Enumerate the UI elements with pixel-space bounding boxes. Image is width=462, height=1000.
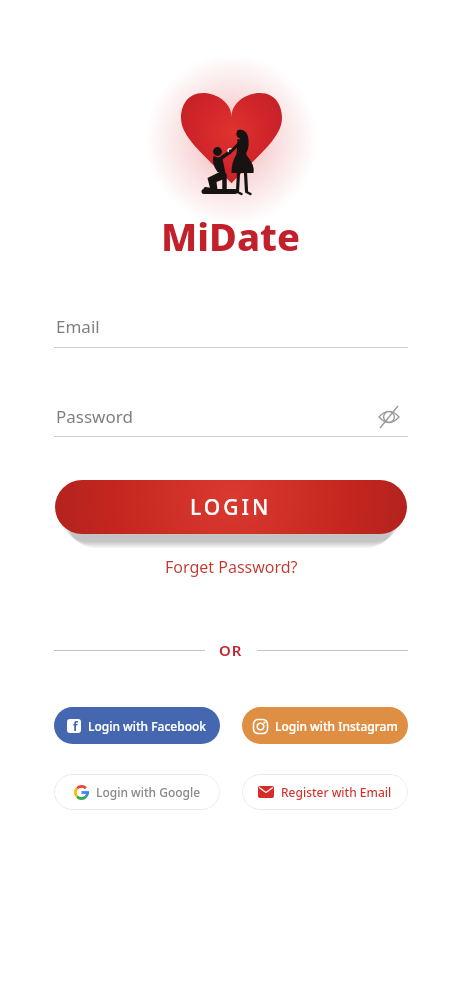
staticText: Login with Facebook bbox=[88, 718, 207, 734]
staticText: Login with Instagram bbox=[275, 718, 398, 734]
staticText: LOGIN bbox=[190, 493, 272, 522]
button[interactable]: LOGIN bbox=[55, 480, 407, 534]
staticText: MiDate bbox=[161, 210, 301, 262]
button[interactable]: Login with Google bbox=[54, 774, 220, 810]
button[interactable]: Login with Instagram bbox=[242, 707, 408, 744]
button[interactable]: Forget Password? bbox=[165, 556, 298, 578]
staticText: Register with Email bbox=[281, 784, 392, 800]
button[interactable]: f bbox=[54, 707, 220, 744]
staticText: Login with Google bbox=[96, 784, 201, 800]
staticText: OR bbox=[219, 640, 243, 660]
staticText: Password bbox=[56, 405, 133, 428]
staticText: f bbox=[73, 719, 78, 732]
staticText: Email bbox=[56, 315, 100, 338]
button[interactable]: Register with Email bbox=[242, 774, 408, 810]
